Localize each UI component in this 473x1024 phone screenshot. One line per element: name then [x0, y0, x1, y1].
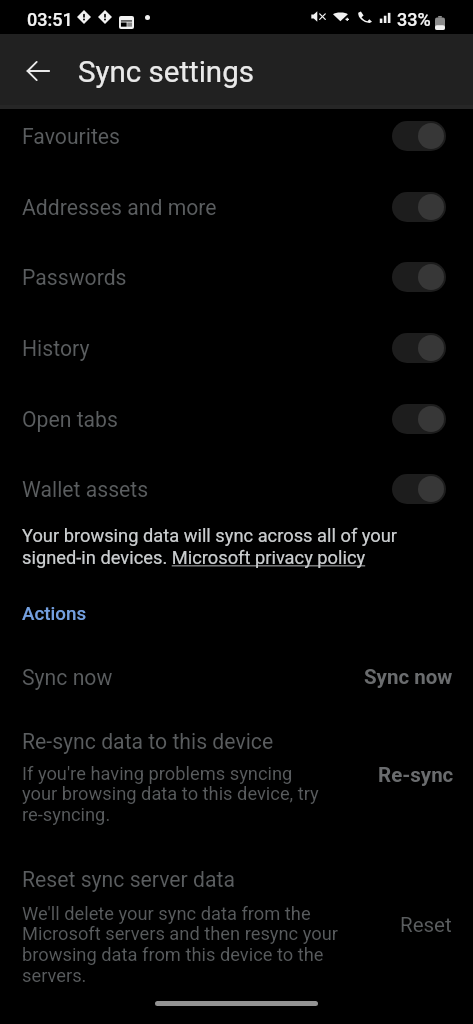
button[interactable]: Re-sync	[367, 754, 465, 798]
staticText: We'll delete your sync data from the Mic…	[22, 903, 347, 987]
staticText: Re-sync data to this device	[22, 729, 274, 754]
button[interactable]: Passwords	[0, 242, 473, 312]
button[interactable]: Re-sync data to this device	[0, 718, 473, 833]
staticText: Re-sync	[378, 763, 454, 787]
staticText: Reset sync server data	[22, 867, 235, 892]
button[interactable]: Actions	[0, 598, 473, 628]
staticText: Actions	[22, 603, 87, 625]
staticText: Addresses and more	[22, 195, 217, 220]
button[interactable]: Back	[10, 43, 66, 99]
staticText: Passwords	[22, 265, 127, 290]
staticText: If you're having problems syncing your b…	[22, 763, 324, 826]
staticText: History	[22, 336, 90, 361]
staticText: Wallet assets	[22, 477, 149, 502]
staticText: Your browsing data will sync across all …	[22, 525, 418, 569]
button[interactable]: Sync now	[355, 656, 461, 700]
button[interactable]: Addresses and more	[0, 172, 473, 242]
staticText: Open tabs	[22, 407, 118, 432]
staticText: Sync settings	[78, 55, 254, 90]
button[interactable]: Wallet assets	[0, 454, 473, 524]
staticText: 03:51	[27, 9, 73, 30]
button[interactable]: Reset	[386, 904, 466, 948]
staticText: Sync now	[22, 665, 113, 690]
button[interactable]: Open tabs	[0, 384, 473, 454]
button[interactable]: History	[0, 313, 473, 383]
button[interactable]: Reset sync server data	[0, 856, 473, 996]
button[interactable]: Favourites	[0, 101, 473, 171]
staticText: Favourites	[22, 124, 121, 149]
button[interactable]: Sync now	[0, 650, 473, 706]
staticText: Sync now	[364, 665, 453, 689]
staticText: Reset	[400, 913, 452, 937]
staticText: 33%	[397, 9, 431, 30]
